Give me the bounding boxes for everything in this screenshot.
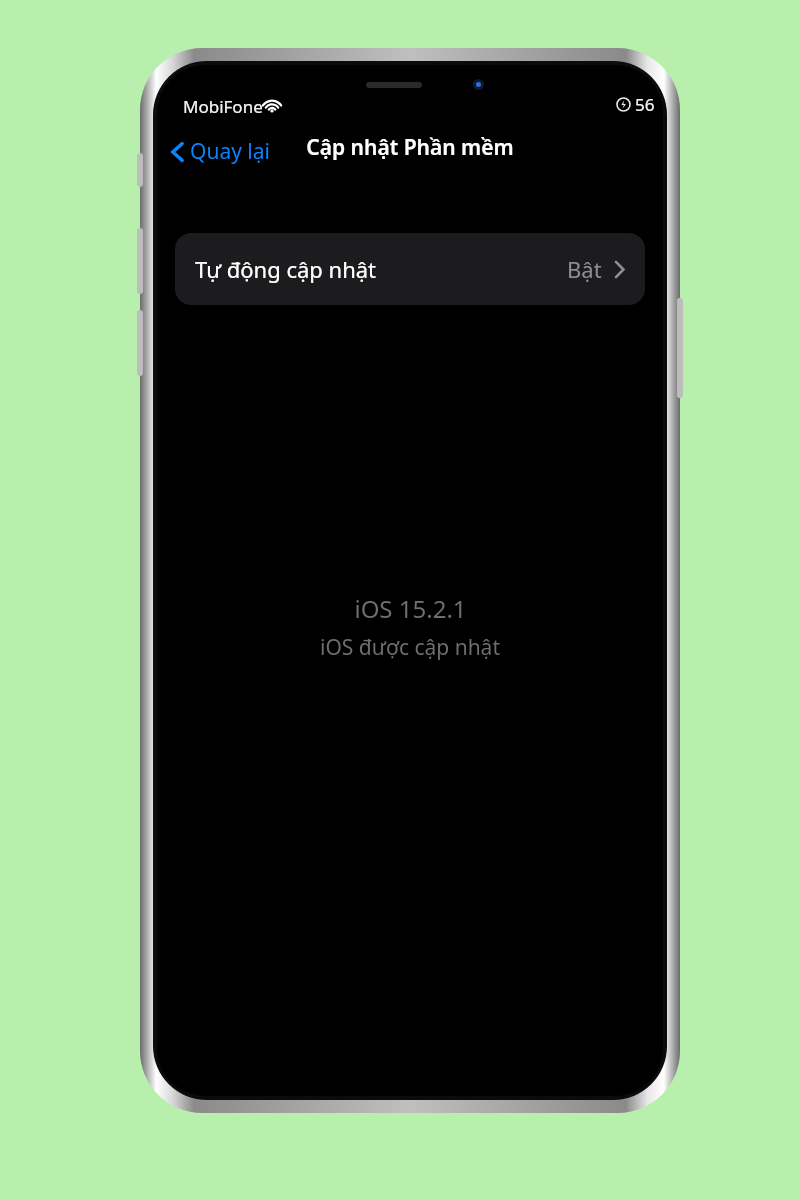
staticText: Cập nhật Phần mềm: [260, 133, 560, 162]
button[interactable]: Quay lại: [165, 133, 276, 170]
staticText: Tự động cập nhật: [195, 254, 377, 284]
staticText: MobiFone: [183, 95, 263, 118]
staticText: Bật: [567, 254, 602, 284]
staticText: iOS được cập nhật: [320, 633, 500, 662]
button[interactable]: Tự động cập nhật: [175, 233, 645, 305]
staticText: iOS 15.2.1: [354, 592, 467, 625]
staticText: 56: [635, 93, 655, 116]
staticText: Quay lại: [190, 137, 270, 166]
